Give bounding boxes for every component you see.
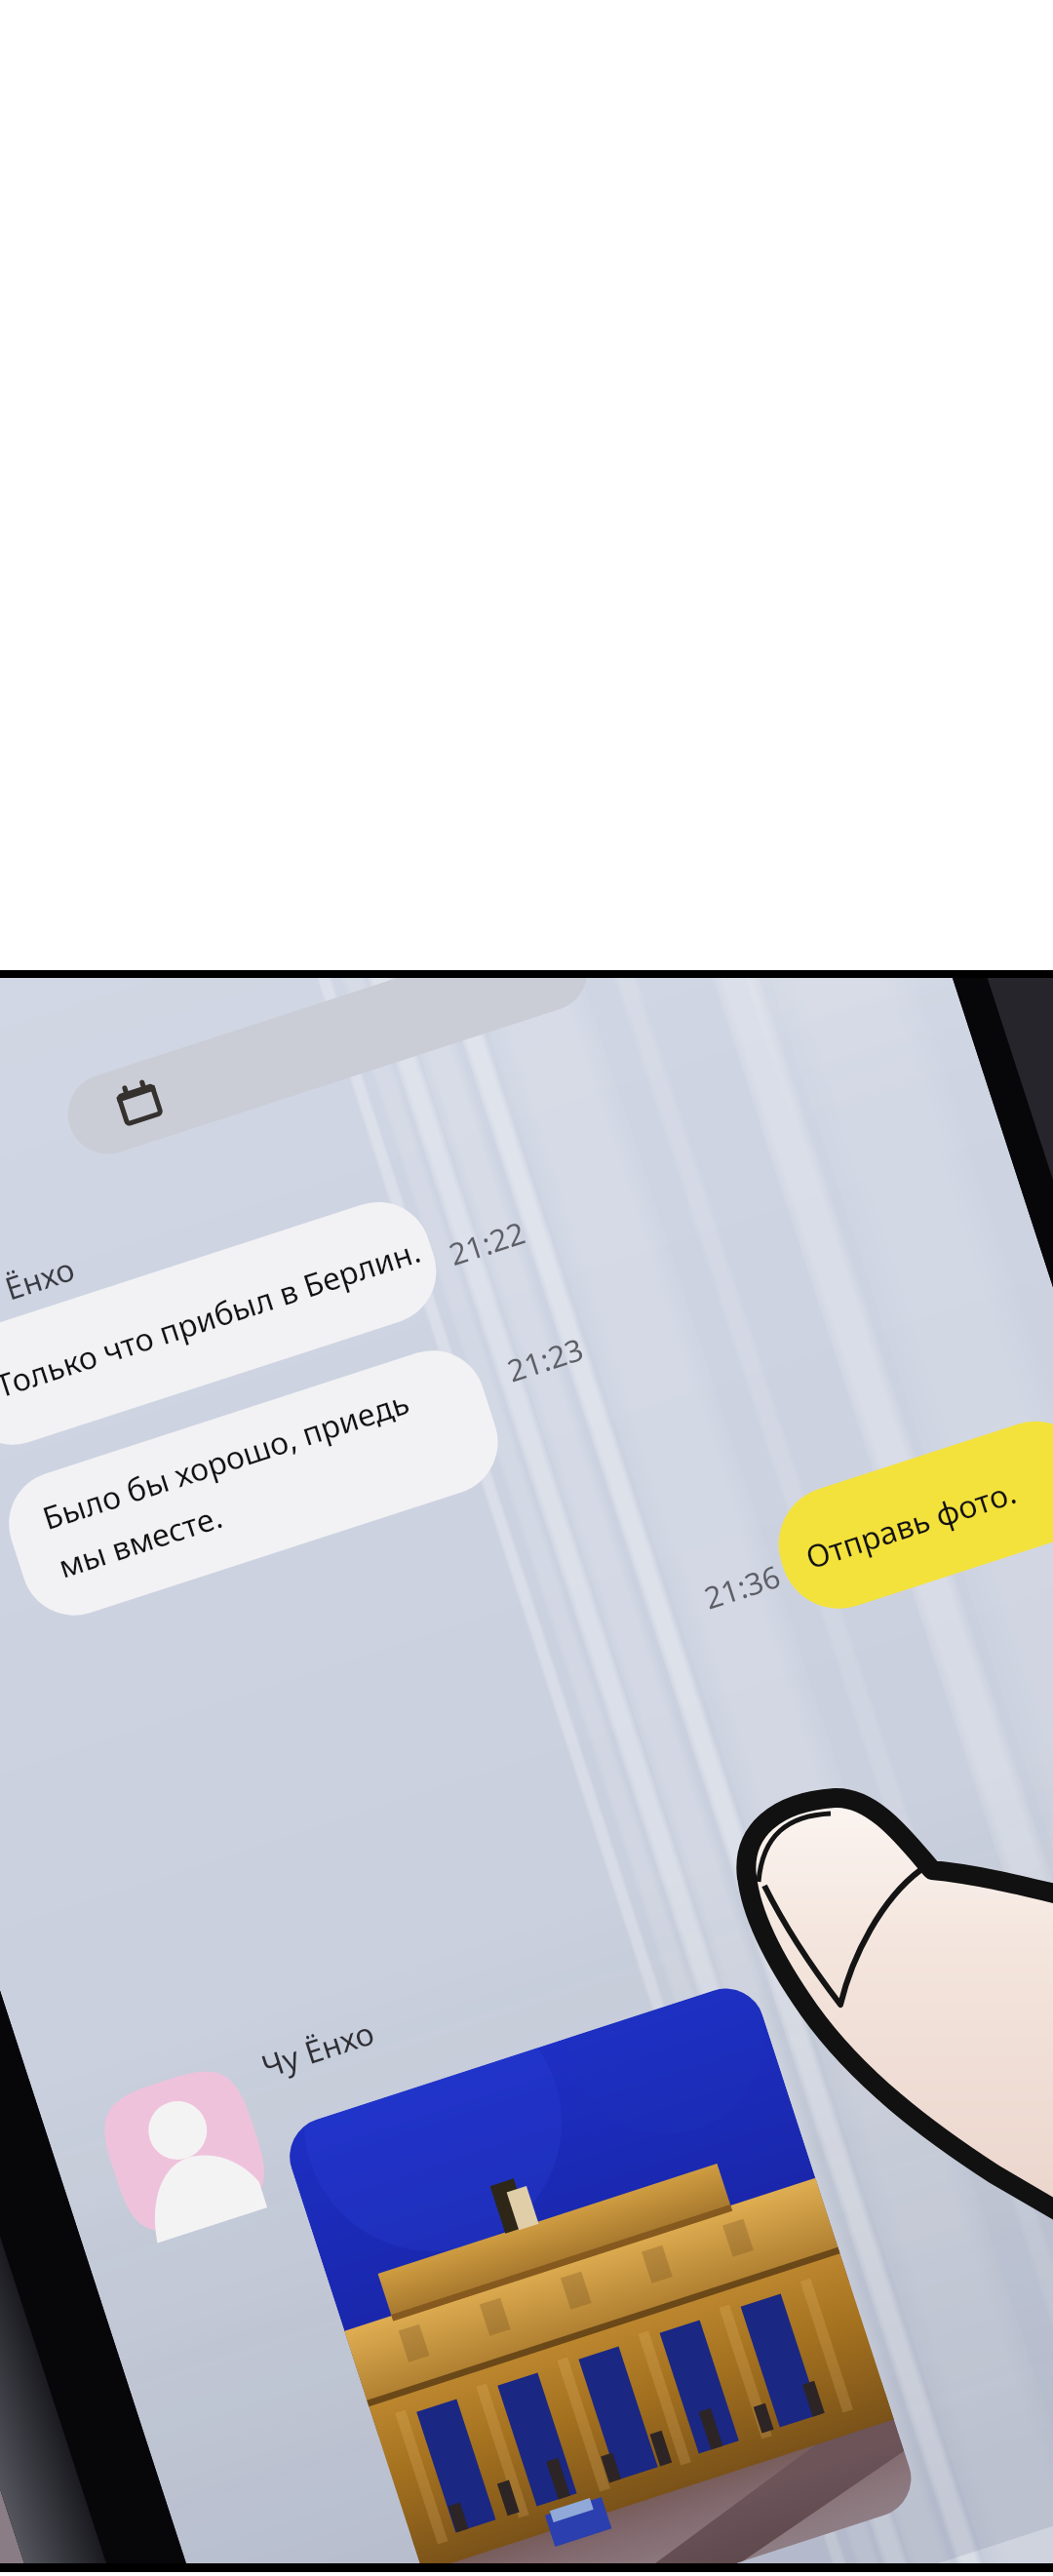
button[interactable]: Profile photo of Chu Yeonho <box>92 2059 276 2243</box>
button[interactable]: Photo of the Brandenburg Gate <box>279 1978 920 2576</box>
button[interactable] <box>0 1337 512 1629</box>
button[interactable] <box>763 1406 1053 1623</box>
button[interactable] <box>0 1188 451 1457</box>
button[interactable]: Calendar <box>57 921 597 1164</box>
